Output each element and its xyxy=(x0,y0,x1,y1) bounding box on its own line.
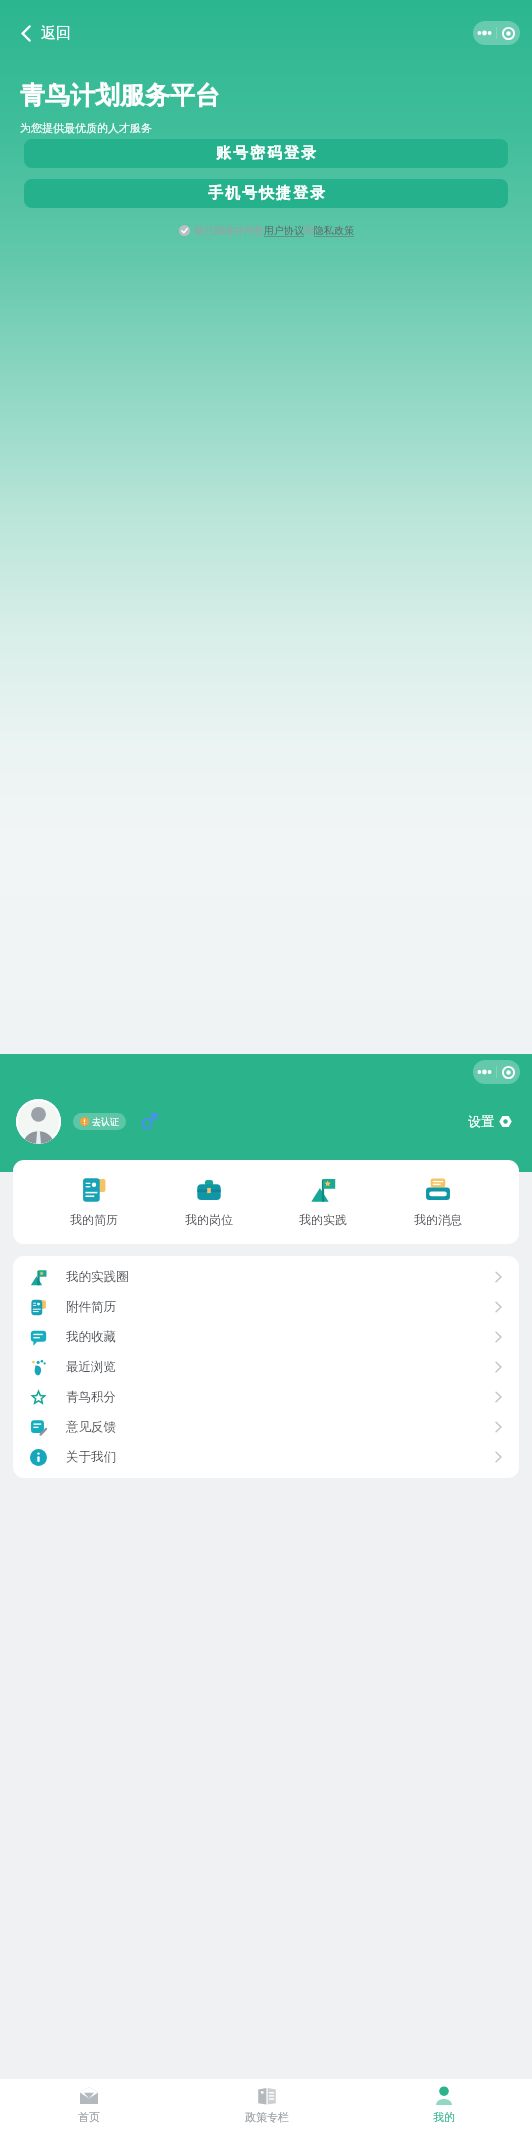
staticText: 我的实践圈 xyxy=(66,1269,129,1285)
button[interactable]: Avatar xyxy=(16,1099,61,1144)
staticText: 我的实践 xyxy=(299,1212,347,1227)
button[interactable]: 我的实践圈 xyxy=(13,1262,519,1292)
button[interactable]: 关于我们 xyxy=(13,1442,519,1472)
button[interactable]: 去认证 xyxy=(73,1113,126,1130)
button[interactable]: 我的消息 xyxy=(404,1175,472,1229)
staticText: 我的岗位 xyxy=(185,1212,233,1227)
button[interactable]: 青鸟积分 xyxy=(13,1382,519,1412)
staticText: 我的消息 xyxy=(414,1212,462,1227)
button[interactable]: Gender male xyxy=(140,1113,157,1130)
staticText: 政策专栏 xyxy=(245,2110,289,2124)
button[interactable]: 我的 xyxy=(355,2079,532,2131)
staticText: 为您提供最优质的人才服务 xyxy=(20,121,152,135)
button[interactable]: 账号密码登录 xyxy=(24,139,508,168)
staticText: 设置 xyxy=(468,1113,494,1129)
button[interactable]: 我的收藏 xyxy=(13,1322,519,1352)
staticText: 我的简历 xyxy=(70,1212,118,1227)
button[interactable]: 首页 xyxy=(0,2079,178,2131)
staticText: 去认证 xyxy=(92,1116,119,1127)
button[interactable]: 我的实践 xyxy=(289,1175,357,1229)
staticText: 我已阅读并同意 xyxy=(194,224,264,237)
button[interactable]: 我的岗位 xyxy=(175,1175,243,1229)
staticText: 账号密码登录 xyxy=(215,144,317,163)
staticText: 和 xyxy=(304,224,314,237)
staticText: 意见反馈 xyxy=(66,1419,116,1435)
button[interactable]: 附件简历 xyxy=(13,1292,519,1322)
button[interactable]: Close mini program xyxy=(497,1060,520,1084)
button[interactable]: 我已阅读并同意 xyxy=(176,221,357,240)
staticText: 首页 xyxy=(78,2110,100,2124)
button[interactable]: More options xyxy=(473,1060,496,1084)
button[interactable]: 意见反馈 xyxy=(13,1412,519,1442)
button[interactable]: 手机号快捷登录 xyxy=(24,179,508,208)
staticText: 关于我们 xyxy=(66,1449,116,1465)
staticText: 最近浏览 xyxy=(66,1359,116,1375)
staticText: 用户协议 xyxy=(264,224,304,237)
button[interactable]: 政策专栏 xyxy=(178,2079,355,2131)
staticText: 我的收藏 xyxy=(66,1329,116,1345)
staticText: 返回 xyxy=(41,24,71,43)
button[interactable]: 我的简历 xyxy=(60,1175,128,1229)
button[interactable]: Close mini program xyxy=(497,21,520,45)
button[interactable]: 设置 xyxy=(464,1109,516,1133)
staticText: 青鸟计划服务平台 xyxy=(20,80,220,111)
button[interactable]: More options xyxy=(473,21,496,45)
staticText: 手机号快捷登录 xyxy=(207,184,326,203)
button[interactable]: 最近浏览 xyxy=(13,1352,519,1382)
staticText: 我的 xyxy=(433,2110,455,2124)
staticText: 青鸟积分 xyxy=(66,1389,116,1405)
button[interactable]: 返回 xyxy=(14,19,77,48)
staticText: 隐私政策 xyxy=(314,224,354,237)
staticText: 附件简历 xyxy=(66,1299,116,1315)
